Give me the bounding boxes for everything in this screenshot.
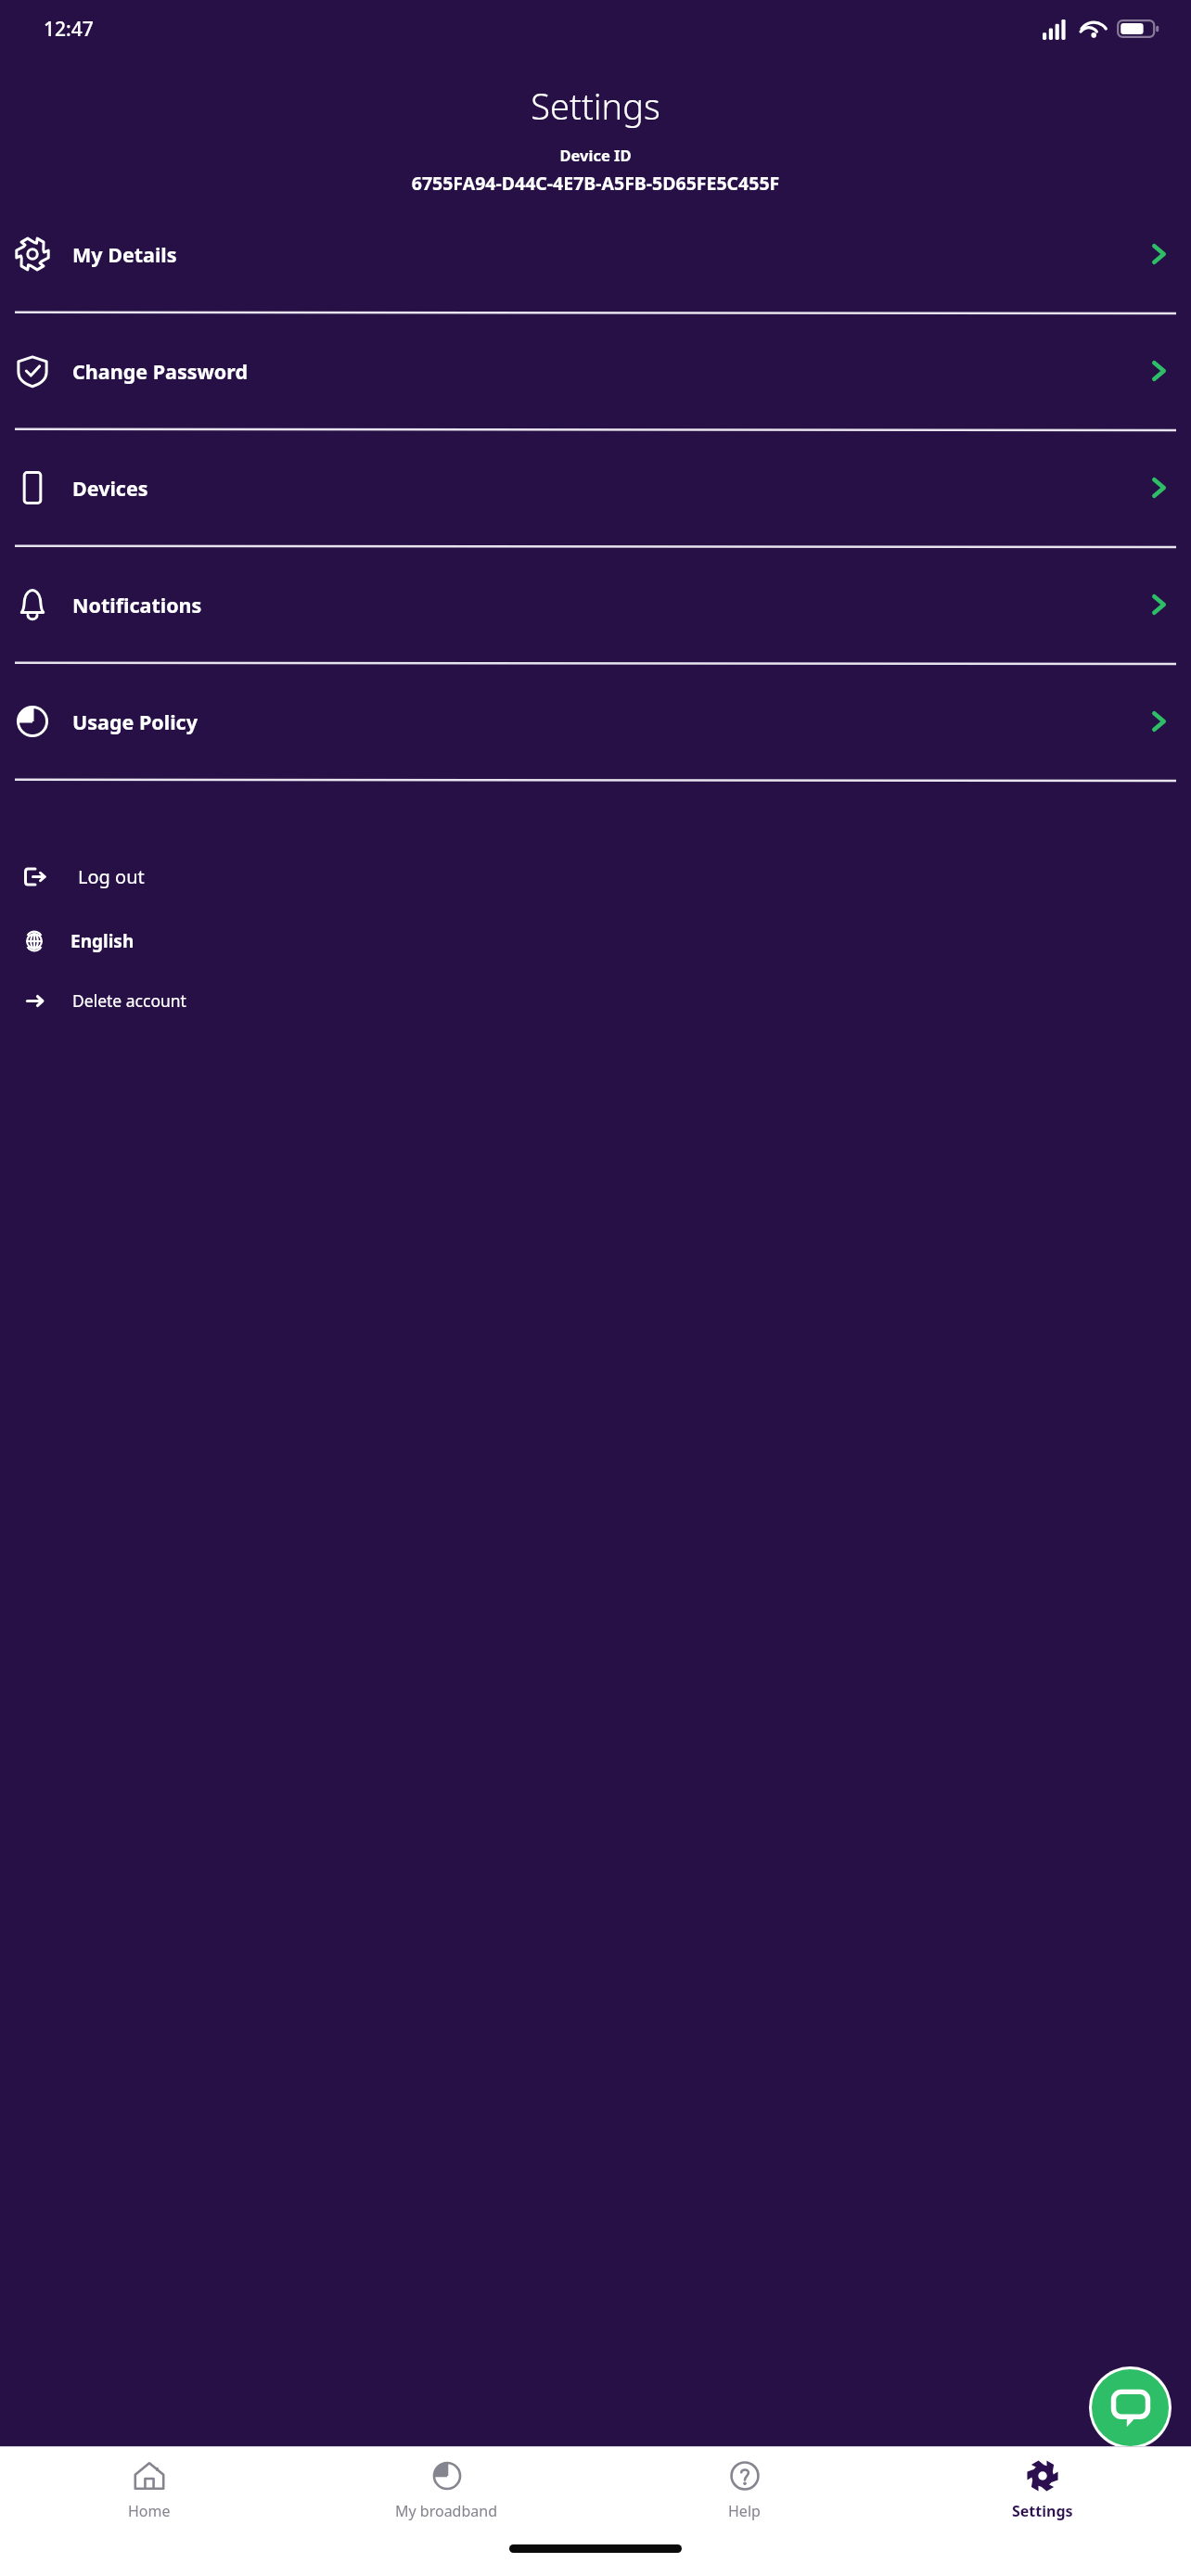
button[interactable]: Chat with us bbox=[1092, 2369, 1169, 2446]
staticText: Settings bbox=[0, 82, 1191, 130]
staticText: 6755FA94-D44C-4E7B-A5FB-5D65FE5C455F bbox=[0, 171, 1191, 196]
staticText: Log out bbox=[78, 864, 145, 889]
button[interactable]: Log out bbox=[0, 856, 1191, 897]
staticText: My Details bbox=[72, 241, 177, 268]
staticText: My broadband bbox=[395, 2501, 498, 2521]
staticText: 12:47 bbox=[44, 16, 94, 43]
button[interactable]: Devices bbox=[0, 455, 1191, 572]
button[interactable]: Help bbox=[595, 2447, 893, 2532]
button[interactable]: Home bbox=[0, 2447, 298, 2532]
staticText: English bbox=[70, 929, 134, 953]
staticText: Settings bbox=[1012, 2501, 1073, 2521]
button[interactable]: Delete account bbox=[0, 980, 1191, 1021]
staticText: Help bbox=[728, 2501, 761, 2521]
staticText: Home bbox=[128, 2501, 171, 2521]
staticText: Device ID bbox=[0, 145, 1191, 165]
button[interactable]: My broadband bbox=[298, 2447, 595, 2532]
staticText: Devices bbox=[72, 475, 148, 502]
button[interactable]: Notifications bbox=[0, 572, 1191, 689]
button[interactable]: Settings bbox=[893, 2447, 1191, 2532]
staticText: Change Password bbox=[72, 358, 249, 385]
button[interactable]: English bbox=[0, 921, 1191, 962]
button[interactable]: My Details bbox=[0, 222, 1191, 338]
staticText: Delete account bbox=[72, 989, 186, 1012]
button[interactable]: Usage Policy bbox=[0, 689, 1191, 806]
button[interactable]: Change Password bbox=[0, 338, 1191, 455]
staticText: Usage Policy bbox=[72, 708, 198, 735]
staticText: Notifications bbox=[72, 592, 202, 618]
